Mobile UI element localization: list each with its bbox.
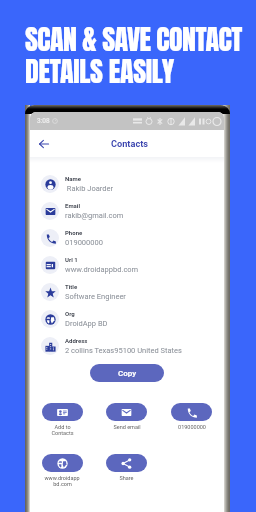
staticText: SCAN & SAVE CONTACT: [25, 18, 242, 60]
other: Send email: [106, 403, 147, 421]
staticText: 2 collins Texas95100 United States: [65, 346, 182, 355]
button[interactable]: Send email: [94, 403, 159, 430]
staticText: Name: [65, 175, 81, 182]
staticText: 019000000: [65, 238, 103, 247]
staticText: Contacts: [51, 430, 74, 436]
staticText: DETAILS EASILY: [25, 50, 174, 92]
other: Open website: [42, 454, 83, 472]
button[interactable]: Call: [159, 403, 224, 430]
staticText: Title: [65, 283, 78, 290]
staticText: bd.com: [53, 481, 72, 487]
staticText: Url 1: [65, 256, 78, 263]
staticText: Phone: [65, 229, 83, 236]
staticText: rakib@gmail.com: [65, 211, 124, 220]
staticText: 019000000: [178, 424, 206, 430]
staticText: www.droidapp: [44, 475, 80, 481]
staticText: DroidApp BD: [65, 319, 108, 328]
staticText: Org: [65, 310, 75, 317]
button[interactable]: Url 1: [30, 251, 224, 278]
button[interactable]: Title: [30, 278, 224, 305]
button[interactable]: Name: [30, 170, 224, 197]
other: Add to contacts: [42, 403, 83, 421]
staticText: 3:08: [37, 117, 50, 125]
button[interactable]: Address: [30, 332, 224, 359]
staticText: Email: [65, 202, 80, 209]
button[interactable]: Org: [30, 305, 224, 332]
other: Call: [171, 403, 212, 421]
staticText: Rakib Joarder: [65, 184, 113, 193]
staticText: Copy: [118, 369, 137, 378]
button[interactable]: Copy: [90, 364, 164, 382]
other: Share: [106, 454, 147, 472]
button[interactable]: Phone: [30, 224, 224, 251]
staticText: Add to: [54, 424, 71, 430]
staticText: Address: [65, 337, 88, 344]
staticText: Software Engineer: [65, 292, 126, 301]
button[interactable]: Email: [30, 197, 224, 224]
staticText: Share: [119, 475, 134, 481]
button[interactable]: Add to contacts: [30, 403, 94, 436]
button[interactable]: Share: [94, 454, 159, 481]
button[interactable]: Open website: [30, 454, 94, 487]
staticText: www.droidappbd.com: [65, 265, 139, 274]
button[interactable]: Back: [35, 135, 53, 153]
staticText: Send email: [113, 424, 141, 430]
staticText: Contacts: [111, 138, 149, 149]
